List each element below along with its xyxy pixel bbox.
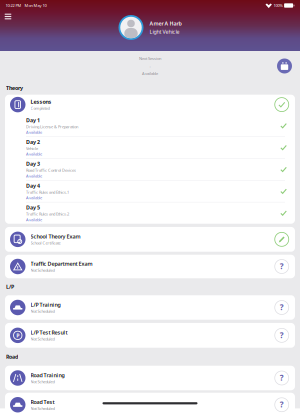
staticText: Road Test xyxy=(30,398,54,405)
staticText: Not Scheduled xyxy=(30,336,54,342)
button[interactable]: P xyxy=(0,323,300,348)
button[interactable]: L/P Training xyxy=(0,295,300,320)
staticText: 10:22 PM Mon May 10 xyxy=(5,3,46,8)
staticText: Lessons xyxy=(30,98,51,105)
staticText: Light Vehicle xyxy=(149,28,179,35)
staticText: Available xyxy=(26,173,42,178)
staticText: Vehicle xyxy=(26,146,38,151)
staticText: Not Scheduled xyxy=(30,379,54,384)
staticText: Day 1 xyxy=(26,116,40,124)
button[interactable]: Road Training xyxy=(0,366,300,390)
staticText: Traffic Rules and Ethics-2 xyxy=(26,211,69,217)
staticText: Not Scheduled xyxy=(30,267,54,273)
staticText: School Certificate xyxy=(30,240,60,246)
staticText: Next Session xyxy=(139,56,161,61)
button[interactable]: Traffic Department Exam xyxy=(0,255,300,278)
staticText: ? xyxy=(280,330,284,340)
staticText: Traffic Department Exam xyxy=(30,260,92,267)
button[interactable]: School Theory Exam xyxy=(0,227,300,252)
staticText: ? xyxy=(280,261,284,271)
staticText: Driving License & Preparation xyxy=(26,124,78,129)
staticText: Day 2 xyxy=(26,138,40,145)
staticText: School Theory Exam xyxy=(30,233,80,240)
staticText: Traffic Rules and Ethics-1 xyxy=(26,189,69,195)
button[interactable]: Day 5 xyxy=(5,202,295,224)
staticText: ? xyxy=(280,372,284,383)
staticText: Available xyxy=(26,151,42,157)
staticText: L/P Training xyxy=(30,301,60,308)
staticText: Day 5 xyxy=(26,204,40,211)
staticText: Available xyxy=(26,195,42,200)
staticText: Day 4 xyxy=(26,182,40,189)
staticText: Day 3 xyxy=(26,160,40,167)
button[interactable]: Road Test xyxy=(0,393,300,417)
button[interactable]: Day 3 xyxy=(5,158,295,180)
staticText: Amer A Harb xyxy=(149,20,181,27)
staticText: Not Scheduled xyxy=(30,308,54,314)
staticText: L/P Test Result xyxy=(30,329,67,336)
staticText: P xyxy=(16,332,19,339)
staticText: L/P xyxy=(6,283,14,290)
staticText: Road Training xyxy=(30,372,64,379)
staticText: 100% xyxy=(273,3,282,8)
button[interactable]: Menu xyxy=(3,11,13,21)
staticText: Road Traffic Control Devices xyxy=(26,168,76,173)
staticText: Road xyxy=(6,353,18,360)
staticText: Not Scheduled xyxy=(30,406,54,411)
button[interactable]: Lessons xyxy=(5,95,295,114)
button[interactable]: Day 4 xyxy=(5,180,295,202)
staticText: Available xyxy=(142,71,158,76)
button[interactable]: Calendar xyxy=(277,58,292,73)
button[interactable]: Day 1 xyxy=(5,114,295,136)
staticText: ? xyxy=(280,302,284,312)
button[interactable]: Day 2 xyxy=(5,136,295,158)
staticText: ? xyxy=(280,399,284,410)
staticText: Available xyxy=(26,129,42,135)
staticText: Theory xyxy=(6,84,23,91)
staticText: Completed xyxy=(30,106,49,111)
staticText: Available xyxy=(26,217,42,222)
